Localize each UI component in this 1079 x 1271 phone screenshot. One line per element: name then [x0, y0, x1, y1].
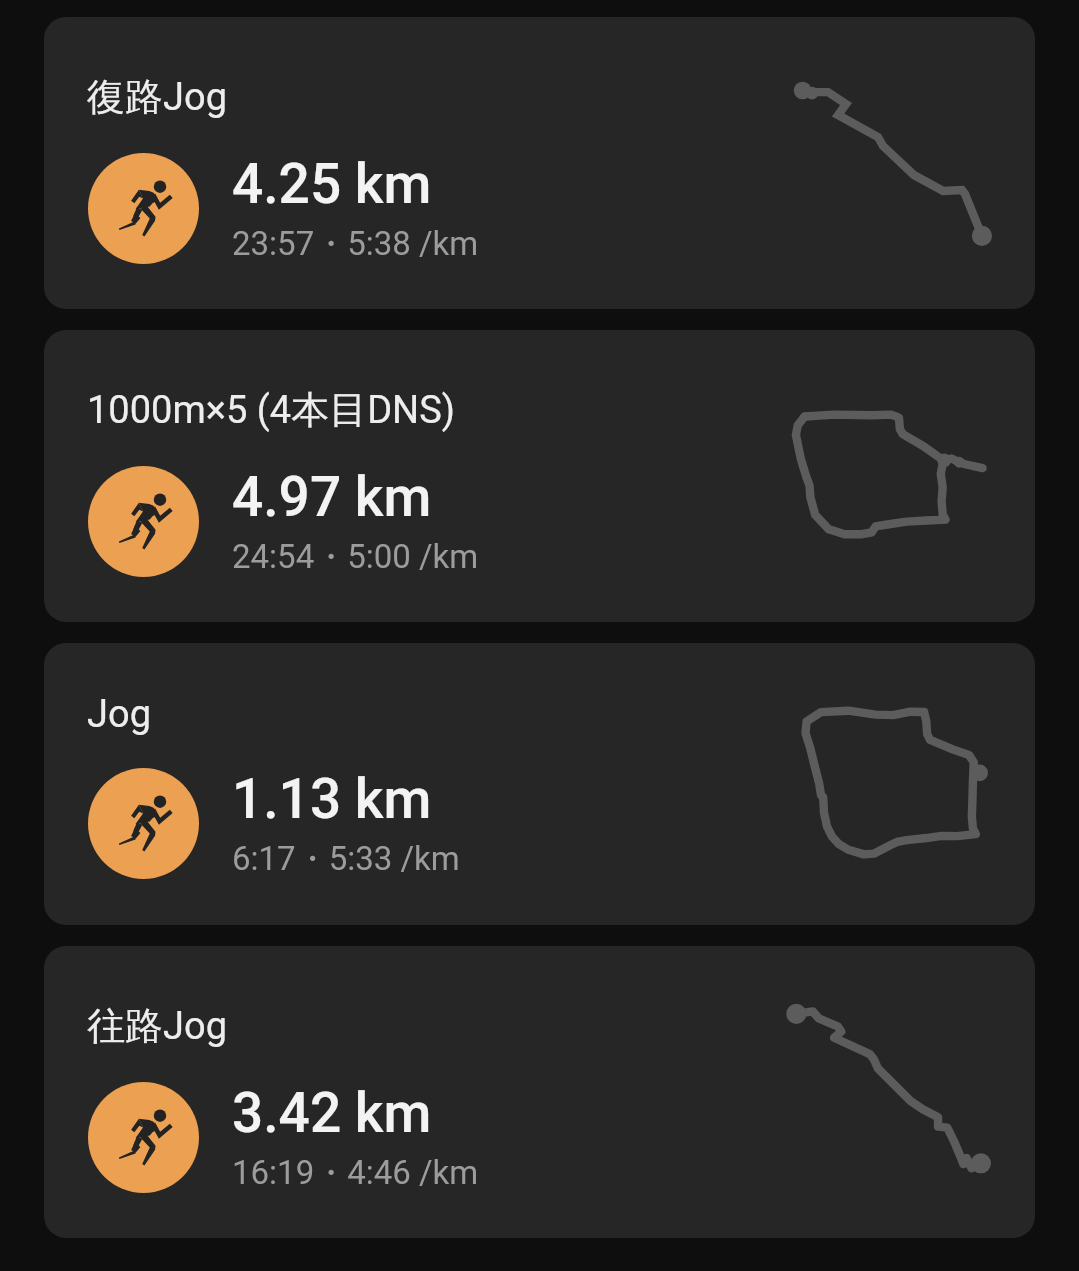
staticText: 24:54・5:00 /km: [232, 536, 479, 578]
staticText: 4.25 km: [232, 152, 432, 216]
other: Running activity: [88, 768, 199, 879]
button[interactable]: Jog: [44, 643, 1035, 925]
other: Running activity: [88, 153, 199, 264]
staticText: 1.13 km: [232, 767, 432, 831]
staticText: 6:17・5:33 /km: [232, 838, 460, 880]
button[interactable]: 往路Jog: [44, 946, 1035, 1238]
staticText: 16:19・4:46 /km: [232, 1152, 479, 1194]
staticText: 1000m×5 (4本目DNS): [87, 386, 456, 434]
staticText: 往路Jog: [87, 1002, 227, 1050]
staticText: 4.97 km: [232, 465, 432, 529]
other: Running activity: [88, 466, 199, 577]
button[interactable]: 復路Jog: [44, 17, 1035, 309]
other: Running activity: [88, 1082, 199, 1193]
staticText: 3.42 km: [232, 1081, 432, 1145]
button[interactable]: 1000m×5 (4本目DNS): [44, 330, 1035, 622]
staticText: 復路Jog: [87, 73, 227, 121]
staticText: Jog: [87, 692, 151, 737]
staticText: 23:57・5:38 /km: [232, 223, 479, 265]
